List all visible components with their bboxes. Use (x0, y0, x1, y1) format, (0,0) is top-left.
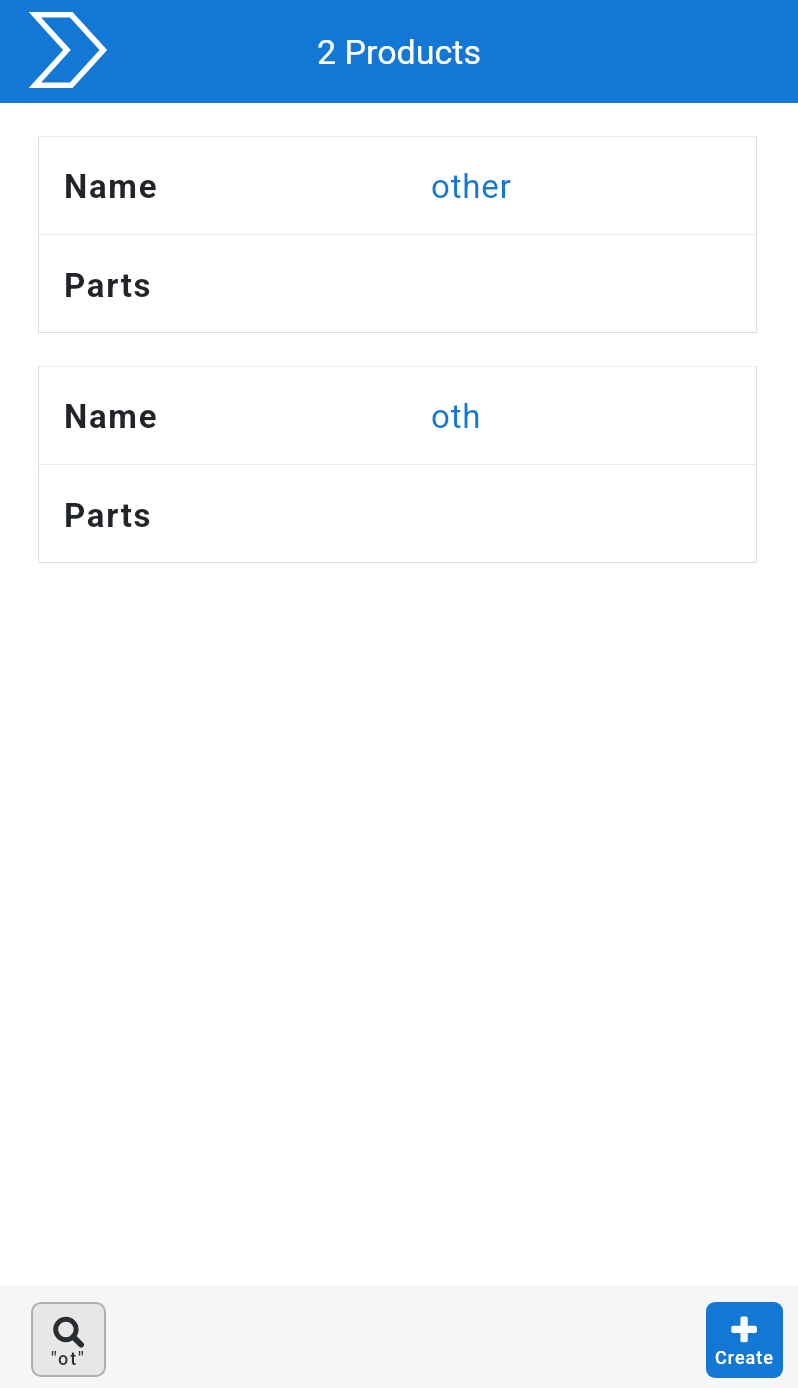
button[interactable]: Search "ot" (31, 1302, 106, 1377)
staticText: Name (64, 167, 431, 206)
staticText: "ot" (51, 1348, 86, 1369)
staticText: 2 Products (317, 32, 481, 72)
staticText: Parts (64, 496, 153, 535)
staticText: Parts (64, 266, 153, 305)
button[interactable]: Menu (0, 0, 120, 103)
button[interactable]: Name (38, 136, 757, 333)
staticText: Create (715, 1347, 774, 1368)
button[interactable]: Create (706, 1302, 783, 1378)
staticText: other (431, 167, 512, 206)
staticText: Name (64, 397, 431, 436)
staticText: oth (431, 397, 482, 436)
button[interactable]: Name (38, 366, 757, 563)
